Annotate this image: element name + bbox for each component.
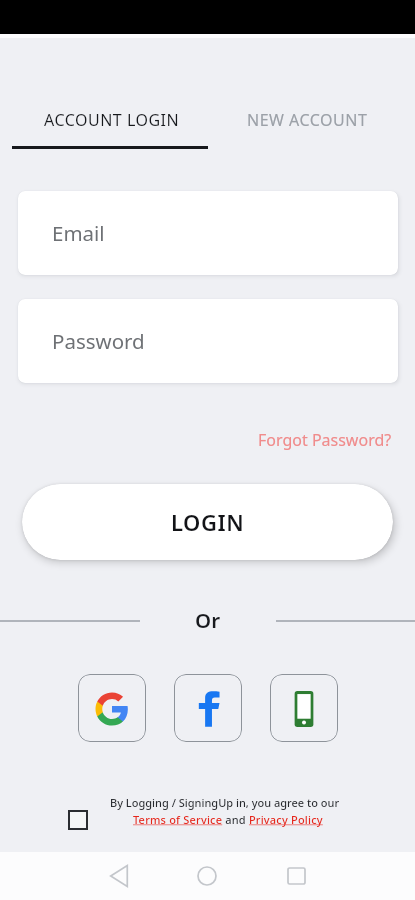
button[interactable]: Agree to terms and privacy policy — [68, 810, 88, 830]
button[interactable]: NEW ACCOUNT — [217, 89, 398, 151]
button[interactable]: Home — [183, 852, 231, 900]
button[interactable]: ACCOUNT LOGIN — [3, 89, 220, 151]
staticText: ACCOUNT LOGIN — [44, 109, 180, 131]
button[interactable]: Back — [95, 852, 143, 900]
button[interactable]: Terms of Service and Privacy Policy — [133, 812, 323, 827]
button[interactable]: Forgot Password? — [258, 429, 392, 451]
staticText: Password — [52, 327, 145, 355]
button[interactable]: Sign in with phone number — [270, 674, 338, 742]
staticText: LOGIN — [171, 507, 245, 537]
staticText: By Logging / SigningUp in, you agree to … — [110, 795, 340, 810]
button[interactable]: Sign in with Facebook — [174, 674, 242, 742]
staticText: NEW ACCOUNT — [247, 109, 368, 131]
button[interactable]: LOGIN — [22, 484, 393, 560]
button[interactable]: Email — [18, 191, 398, 275]
staticText: Or — [195, 606, 221, 634]
button[interactable]: Recent apps — [272, 852, 320, 900]
button[interactable]: Sign in with Google — [78, 674, 146, 742]
staticText: Email — [52, 219, 105, 247]
button[interactable]: Password — [18, 299, 398, 383]
